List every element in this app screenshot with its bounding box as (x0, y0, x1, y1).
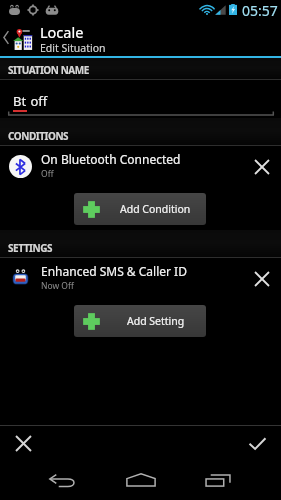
staticText: off (27, 92, 48, 110)
button[interactable]: Enhanced SMS & Caller ID (0, 258, 281, 302)
button[interactable]: Home (94, 460, 188, 500)
staticText: Off (41, 168, 54, 180)
staticText: Bt (13, 92, 27, 110)
button[interactable]: Locale (0, 19, 281, 56)
staticText: CONDITIONS (8, 129, 69, 143)
staticText: Enhanced SMS & Caller ID (41, 263, 187, 279)
staticText: Edit Situation (40, 41, 106, 55)
button[interactable]: Done (140, 426, 281, 460)
staticText: Add Condition (120, 202, 191, 216)
button[interactable]: Add Setting (74, 305, 206, 337)
button[interactable]: On Bluetooth Connected (0, 146, 281, 190)
staticText: Add Setting (127, 314, 185, 328)
button[interactable]: Cancel (0, 426, 140, 460)
button[interactable]: Remove (240, 146, 281, 190)
staticText: On Bluetooth Connected (41, 151, 181, 167)
button[interactable]: Add Condition (74, 193, 206, 225)
staticText: SETTINGS (8, 241, 53, 255)
button[interactable]: Remove (240, 258, 281, 302)
staticText: SITUATION NAME (8, 63, 89, 77)
staticText: Now Off (41, 280, 74, 292)
button[interactable]: Recent apps (171, 460, 264, 500)
button[interactable]: Bt (0, 80, 281, 118)
staticText: Locale (40, 22, 84, 42)
button[interactable]: Back (15, 460, 109, 500)
staticText: 05:57 (242, 1, 278, 20)
